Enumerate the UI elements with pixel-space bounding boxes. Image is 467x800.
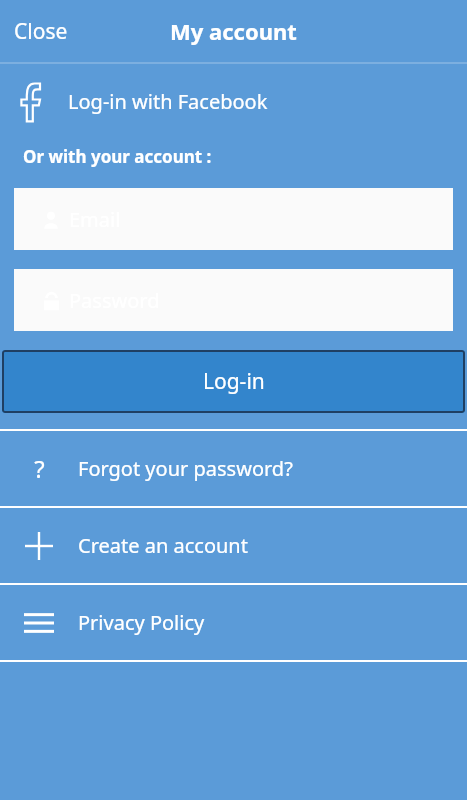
button[interactable]: Privacy Policy <box>0 585 467 660</box>
staticText: Forgot your password? <box>78 455 293 482</box>
staticText: Close <box>14 17 68 46</box>
staticText: ? <box>34 452 45 485</box>
button[interactable]: Log-in <box>2 350 465 413</box>
staticText: Or with your account : <box>23 145 212 168</box>
button[interactable]: Create an account <box>0 508 467 583</box>
staticText: Privacy Policy <box>78 609 205 636</box>
button[interactable]: Log-in with Facebook <box>0 64 467 139</box>
button[interactable]: Close <box>8 11 74 52</box>
button[interactable]: ? <box>0 431 467 506</box>
staticText: Log-in <box>203 367 265 396</box>
staticText: Log-in with Facebook <box>68 88 268 115</box>
staticText: My account <box>170 16 297 46</box>
staticText: Create an account <box>78 532 248 559</box>
